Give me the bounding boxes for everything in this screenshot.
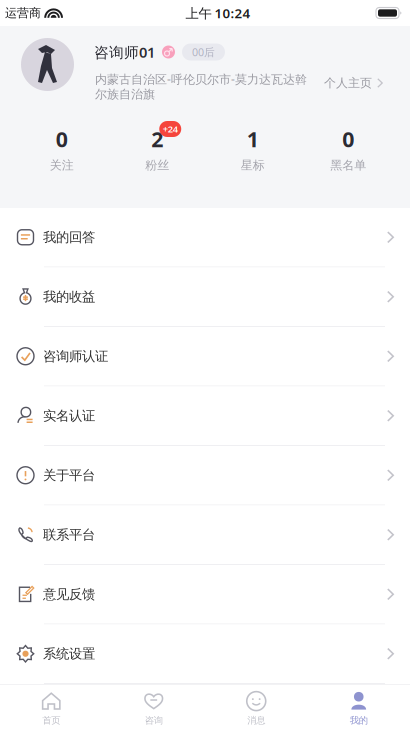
staticText: 粉丝: [145, 158, 169, 173]
staticText: 个人主页: [324, 76, 372, 90]
staticText: 意见反馈: [43, 586, 95, 602]
button[interactable]: 1: [205, 126, 300, 173]
button[interactable]: 首页: [0, 684, 102, 732]
staticText: 内蒙古自治区-呼伦贝尔市-莫力达瓦达斡尔族自治旗: [95, 71, 307, 102]
staticText: 上午 10:24: [186, 4, 251, 22]
staticText: 我的收益: [43, 289, 95, 305]
button[interactable]: 联系平台: [0, 505, 410, 564]
button[interactable]: 消息: [205, 684, 307, 732]
staticText: 00后: [192, 45, 215, 59]
staticText: 首页: [42, 715, 60, 726]
staticText: 运营商: [5, 6, 41, 20]
staticText: 1: [247, 125, 259, 153]
staticText: 实名认证: [43, 408, 95, 424]
button[interactable]: 我的: [307, 684, 410, 732]
button[interactable]: 我的收益: [0, 267, 410, 326]
button[interactable]: 2: [109, 126, 205, 173]
button[interactable]: 个人主页: [320, 72, 387, 94]
staticText: 消息: [247, 715, 265, 726]
staticText: 0: [342, 125, 354, 153]
staticText: 星标: [241, 158, 265, 173]
button[interactable]: 0: [14, 126, 109, 173]
staticText: 系统设置: [43, 646, 95, 662]
staticText: 0: [56, 125, 68, 153]
staticText: 我的回答: [43, 229, 95, 245]
button[interactable]: 实名认证: [0, 386, 410, 445]
staticText: 咨询师认证: [43, 348, 108, 364]
staticText: +24: [163, 123, 178, 135]
staticText: 咨询: [145, 715, 163, 726]
button[interactable]: 关于平台: [0, 446, 410, 504]
staticText: 联系平台: [43, 527, 95, 543]
button[interactable]: 咨询: [102, 684, 205, 732]
button[interactable]: 头像: [21, 38, 74, 91]
staticText: 2: [151, 125, 163, 153]
button[interactable]: 0: [300, 126, 396, 173]
button[interactable]: 系统设置: [0, 624, 410, 683]
staticText: 关于平台: [43, 467, 95, 483]
button[interactable]: 意见反馈: [0, 565, 410, 623]
staticText: 咨询师01: [94, 42, 155, 62]
staticText: 我的: [350, 715, 368, 726]
staticText: 黑名单: [330, 158, 366, 173]
button[interactable]: 我的回答: [0, 208, 410, 266]
staticText: 关注: [50, 158, 74, 173]
button[interactable]: 咨询师认证: [0, 327, 410, 385]
